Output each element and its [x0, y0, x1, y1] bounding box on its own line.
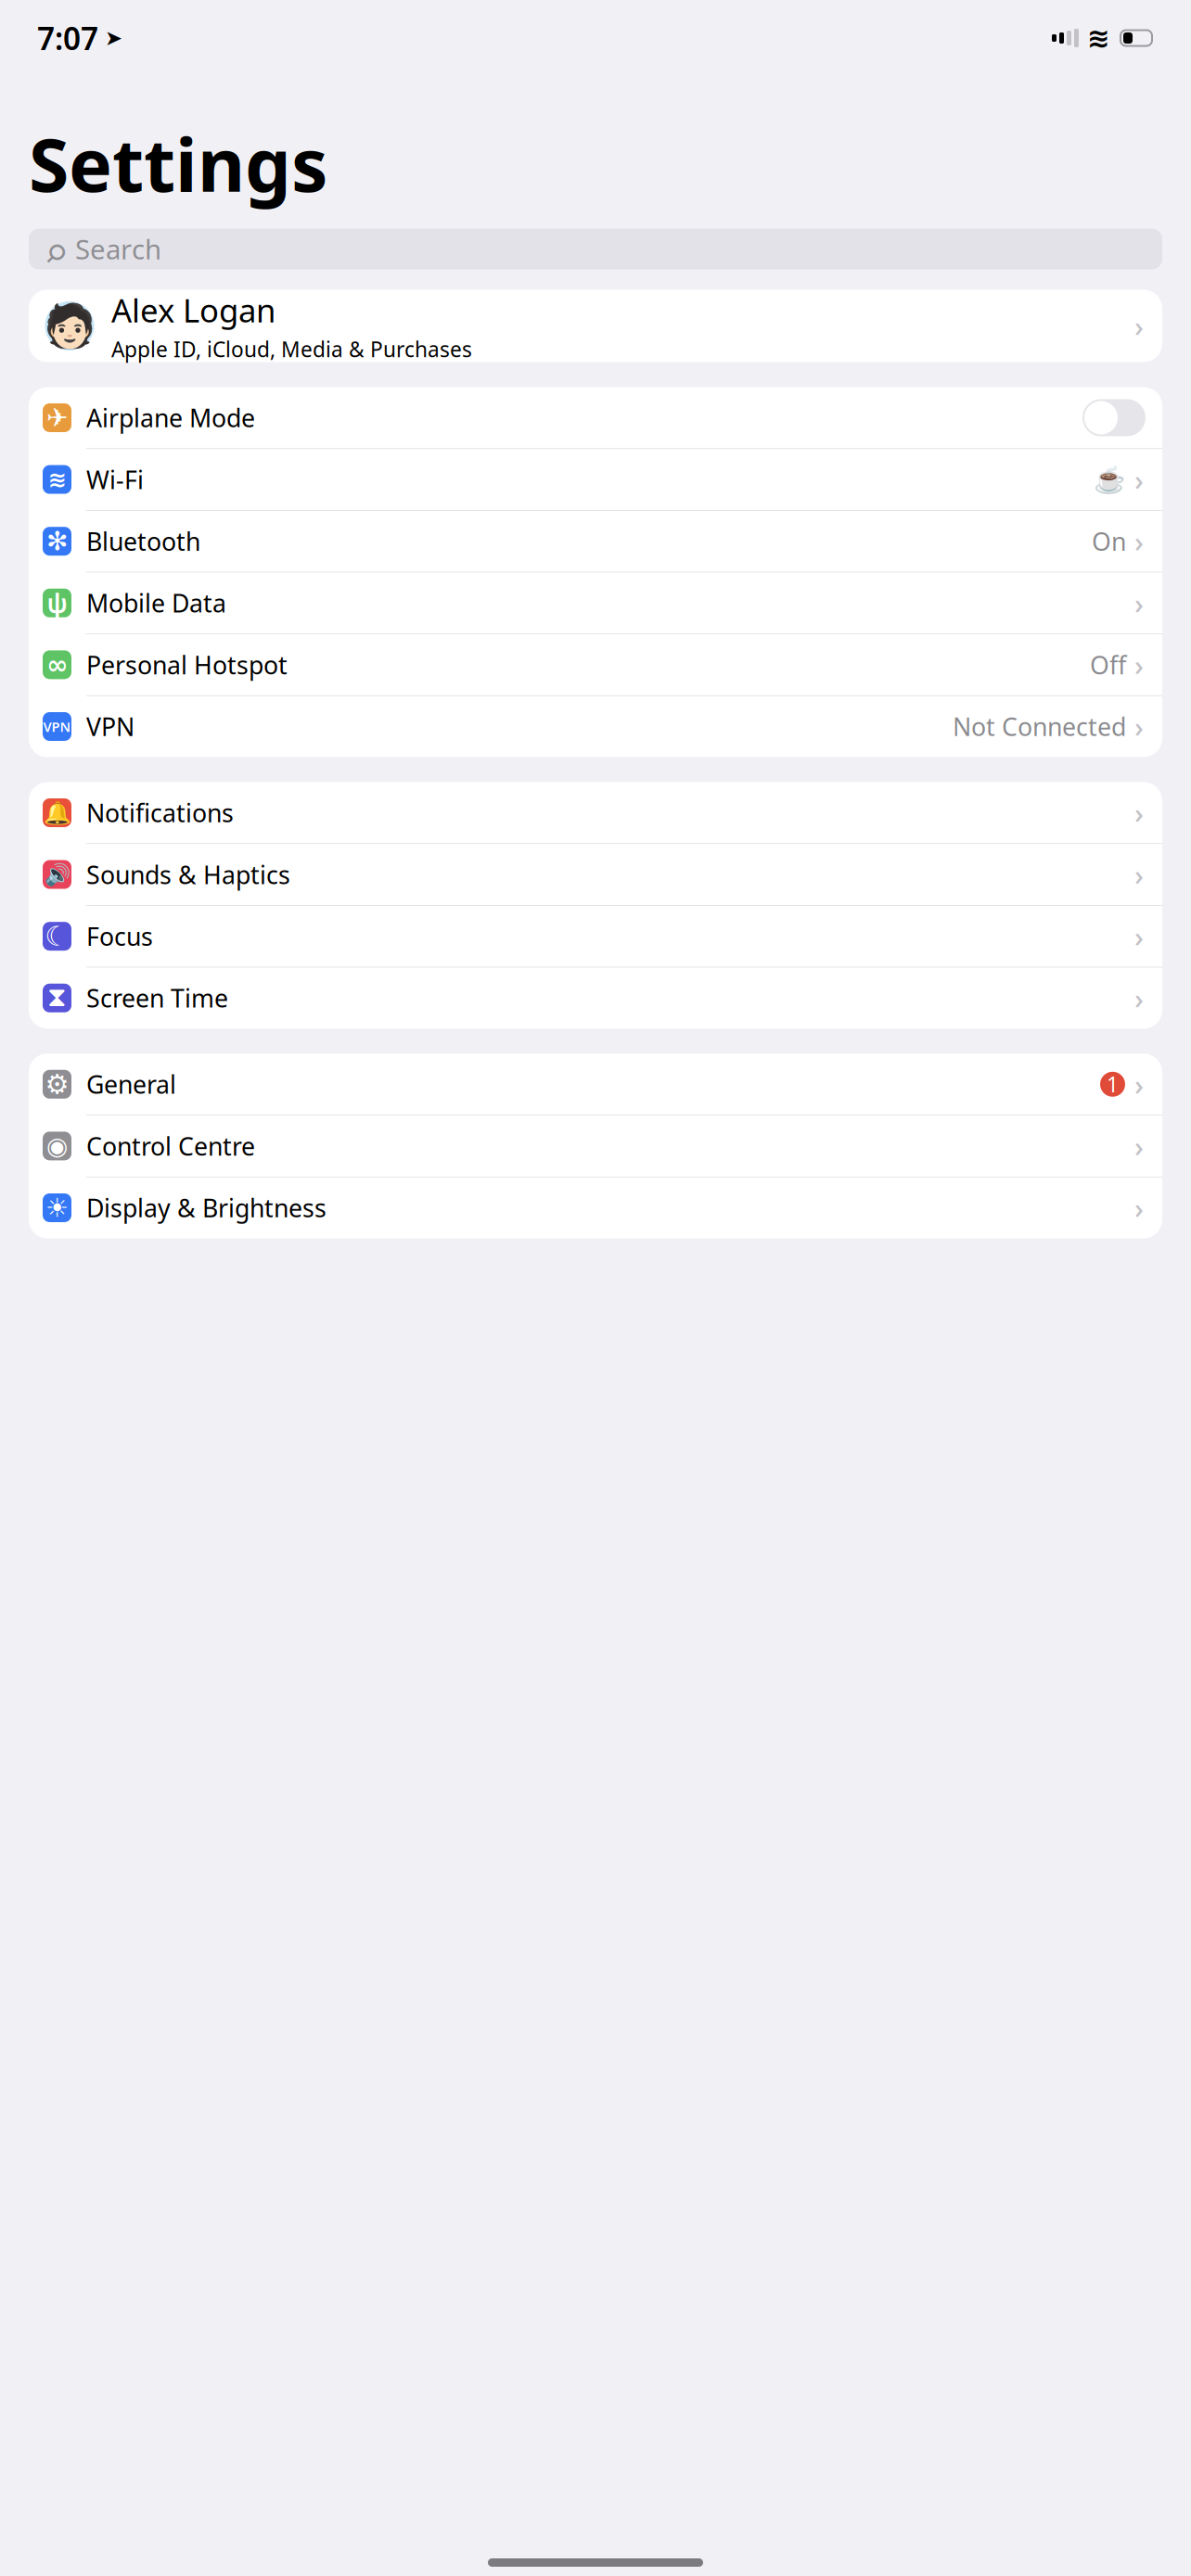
staticText: ∞	[46, 650, 68, 680]
button[interactable]: ⌕	[29, 229, 1162, 269]
button[interactable]: VPN	[29, 696, 1162, 757]
staticText: ◉	[46, 1132, 68, 1160]
button[interactable]: ⚙	[29, 1054, 1162, 1115]
staticText: ›	[1134, 856, 1144, 893]
staticText: Bluetooth	[86, 525, 200, 558]
staticText: ≋	[48, 467, 66, 492]
staticText: Settings	[29, 115, 327, 212]
staticText: 7:07	[37, 18, 98, 59]
staticText: ⚙	[45, 1069, 69, 1100]
staticText: ☀	[45, 1193, 69, 1223]
staticText: 🔊	[44, 862, 70, 886]
staticText: Airplane Mode	[86, 401, 255, 434]
staticText: Wi-Fi	[86, 463, 144, 496]
staticText: ✈	[46, 403, 68, 432]
staticText: Personal Hotspot	[86, 648, 288, 681]
staticText: Sounds & Haptics	[86, 858, 290, 891]
staticText: ☾	[45, 921, 69, 952]
staticText: ›	[1134, 522, 1144, 560]
staticText: 🔔	[43, 800, 71, 825]
staticText: VPN	[43, 717, 71, 736]
staticText: ›	[1134, 979, 1144, 1017]
staticText: ➤	[105, 26, 122, 50]
staticText: Off	[1090, 648, 1126, 681]
staticText: ›	[1134, 307, 1144, 345]
button[interactable]: ≋	[29, 449, 1162, 510]
staticText: On	[1092, 525, 1126, 558]
button[interactable]: ∞	[29, 634, 1162, 695]
button[interactable]: ⧗	[29, 967, 1162, 1029]
staticText: ›	[1134, 917, 1144, 955]
staticText: ⧗	[47, 985, 67, 1011]
staticText: Search	[75, 231, 161, 267]
staticText: ›	[1134, 1065, 1144, 1103]
staticText: Notifications	[86, 796, 234, 829]
staticText: ›	[1134, 708, 1144, 745]
staticText: ›	[1134, 794, 1144, 832]
staticText: ›	[1134, 584, 1144, 622]
staticText: VPN	[86, 710, 134, 743]
button[interactable]: ☀	[29, 1177, 1162, 1238]
button[interactable]: ☾	[29, 906, 1162, 967]
button[interactable]: ψ	[29, 572, 1162, 634]
button[interactable]: 🔊	[29, 844, 1162, 905]
staticText: Display & Brightness	[86, 1191, 327, 1224]
button[interactable]: ✈	[29, 387, 1162, 448]
button[interactable]: 🔔	[29, 782, 1162, 843]
button[interactable]: ◉	[29, 1115, 1162, 1177]
button[interactable]: 🧑🏻	[29, 290, 1162, 362]
staticText: ›	[1134, 646, 1144, 684]
staticText: Alex Logan	[111, 289, 275, 331]
staticText: ⌕	[45, 216, 67, 282]
staticText: ψ	[47, 586, 67, 620]
staticText: Not Connected	[953, 710, 1126, 743]
staticText: ›	[1134, 461, 1144, 498]
staticText: 🧑🏻	[44, 302, 96, 350]
staticText: ≋	[1087, 23, 1110, 54]
staticText: 1	[1107, 1070, 1119, 1098]
staticText: General	[86, 1068, 176, 1101]
staticText: Mobile Data	[86, 587, 226, 619]
button[interactable]: ✻	[29, 511, 1162, 572]
staticText: ›	[1134, 1189, 1144, 1227]
staticText: ☕	[1094, 465, 1126, 494]
staticText: ›	[1134, 1127, 1144, 1165]
staticText: ✻	[46, 527, 68, 556]
staticText: Apple ID, iCloud, Media & Purchases	[111, 335, 472, 363]
staticText: Focus	[86, 920, 153, 953]
staticText: Screen Time	[86, 982, 228, 1014]
staticText: Control Centre	[86, 1130, 255, 1162]
